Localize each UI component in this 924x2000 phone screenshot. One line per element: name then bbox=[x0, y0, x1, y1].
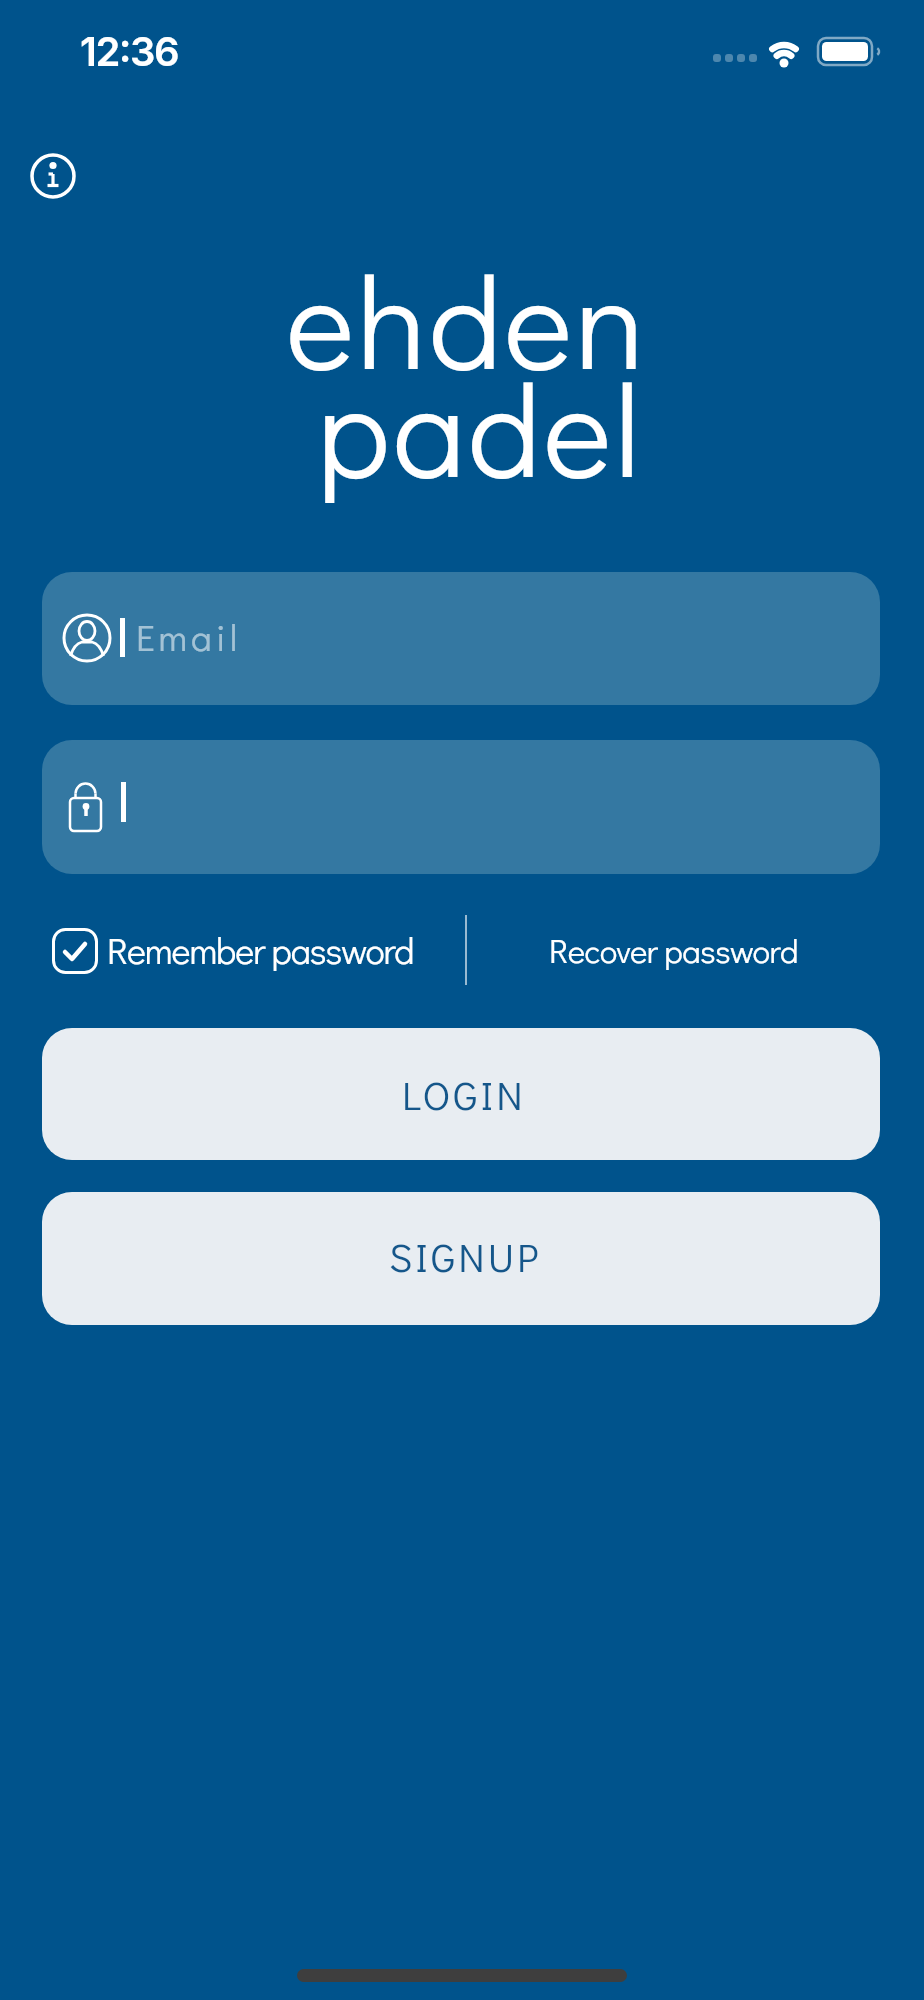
button[interactable] bbox=[28, 151, 78, 201]
button[interactable]: SIGNUP bbox=[42, 1192, 880, 1325]
button[interactable]: Email bbox=[42, 572, 880, 705]
staticText: Remember password bbox=[107, 926, 414, 973]
staticText: LOGIN bbox=[402, 1068, 526, 1120]
button[interactable] bbox=[42, 740, 880, 874]
staticText: ehden bbox=[286, 233, 648, 403]
button[interactable]: Remember password bbox=[52, 928, 412, 975]
staticText: 12:36 bbox=[80, 27, 179, 75]
button[interactable]: Recover password bbox=[500, 926, 846, 973]
staticText: SIGNUP bbox=[389, 1230, 542, 1282]
staticText: Recover password bbox=[549, 928, 798, 971]
staticText: padel bbox=[317, 341, 643, 511]
button[interactable]: LOGIN bbox=[42, 1028, 880, 1160]
staticText: Email bbox=[136, 612, 242, 661]
